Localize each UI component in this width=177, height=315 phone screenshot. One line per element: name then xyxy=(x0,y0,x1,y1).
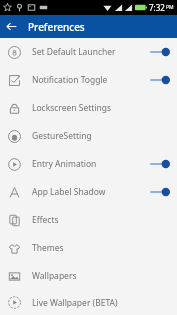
staticText: PM xyxy=(166,4,174,11)
button[interactable]: Back xyxy=(0,15,23,38)
button[interactable]: Notification Toggle xyxy=(0,66,177,94)
button[interactable]: Themes xyxy=(0,234,177,262)
staticText: Themes xyxy=(32,242,64,254)
staticText: 7:32 xyxy=(149,2,165,13)
staticText: Entry Animation xyxy=(32,158,97,170)
staticText: Live Wallpaper (BETA) xyxy=(32,297,118,309)
button[interactable]: Toggle xyxy=(150,185,170,199)
staticText: Set Default Launcher xyxy=(32,46,116,58)
button[interactable]: Set Default Launcher xyxy=(0,38,177,66)
staticText: Lockscreen Settings xyxy=(32,102,112,114)
button[interactable]: Entry Animation xyxy=(0,150,177,178)
button[interactable]: Toggle xyxy=(150,157,170,171)
button[interactable]: GestureSetting xyxy=(0,122,177,150)
button[interactable]: Live Wallpaper (BETA) xyxy=(0,290,177,315)
staticText: Effects xyxy=(32,214,59,226)
button[interactable]: Wallpapers xyxy=(0,262,177,290)
staticText: Preferences xyxy=(28,20,85,34)
staticText: App Label Shadow xyxy=(32,186,106,198)
button[interactable]: Toggle xyxy=(150,45,170,59)
button[interactable]: Toggle xyxy=(150,73,170,87)
staticText: Notification Toggle xyxy=(32,74,108,86)
staticText: Wallpapers xyxy=(32,270,77,282)
staticText: GestureSetting xyxy=(32,130,92,142)
button[interactable]: App Label Shadow xyxy=(0,178,177,206)
button[interactable]: Lockscreen Settings xyxy=(0,94,177,122)
button[interactable]: Effects xyxy=(0,206,177,234)
